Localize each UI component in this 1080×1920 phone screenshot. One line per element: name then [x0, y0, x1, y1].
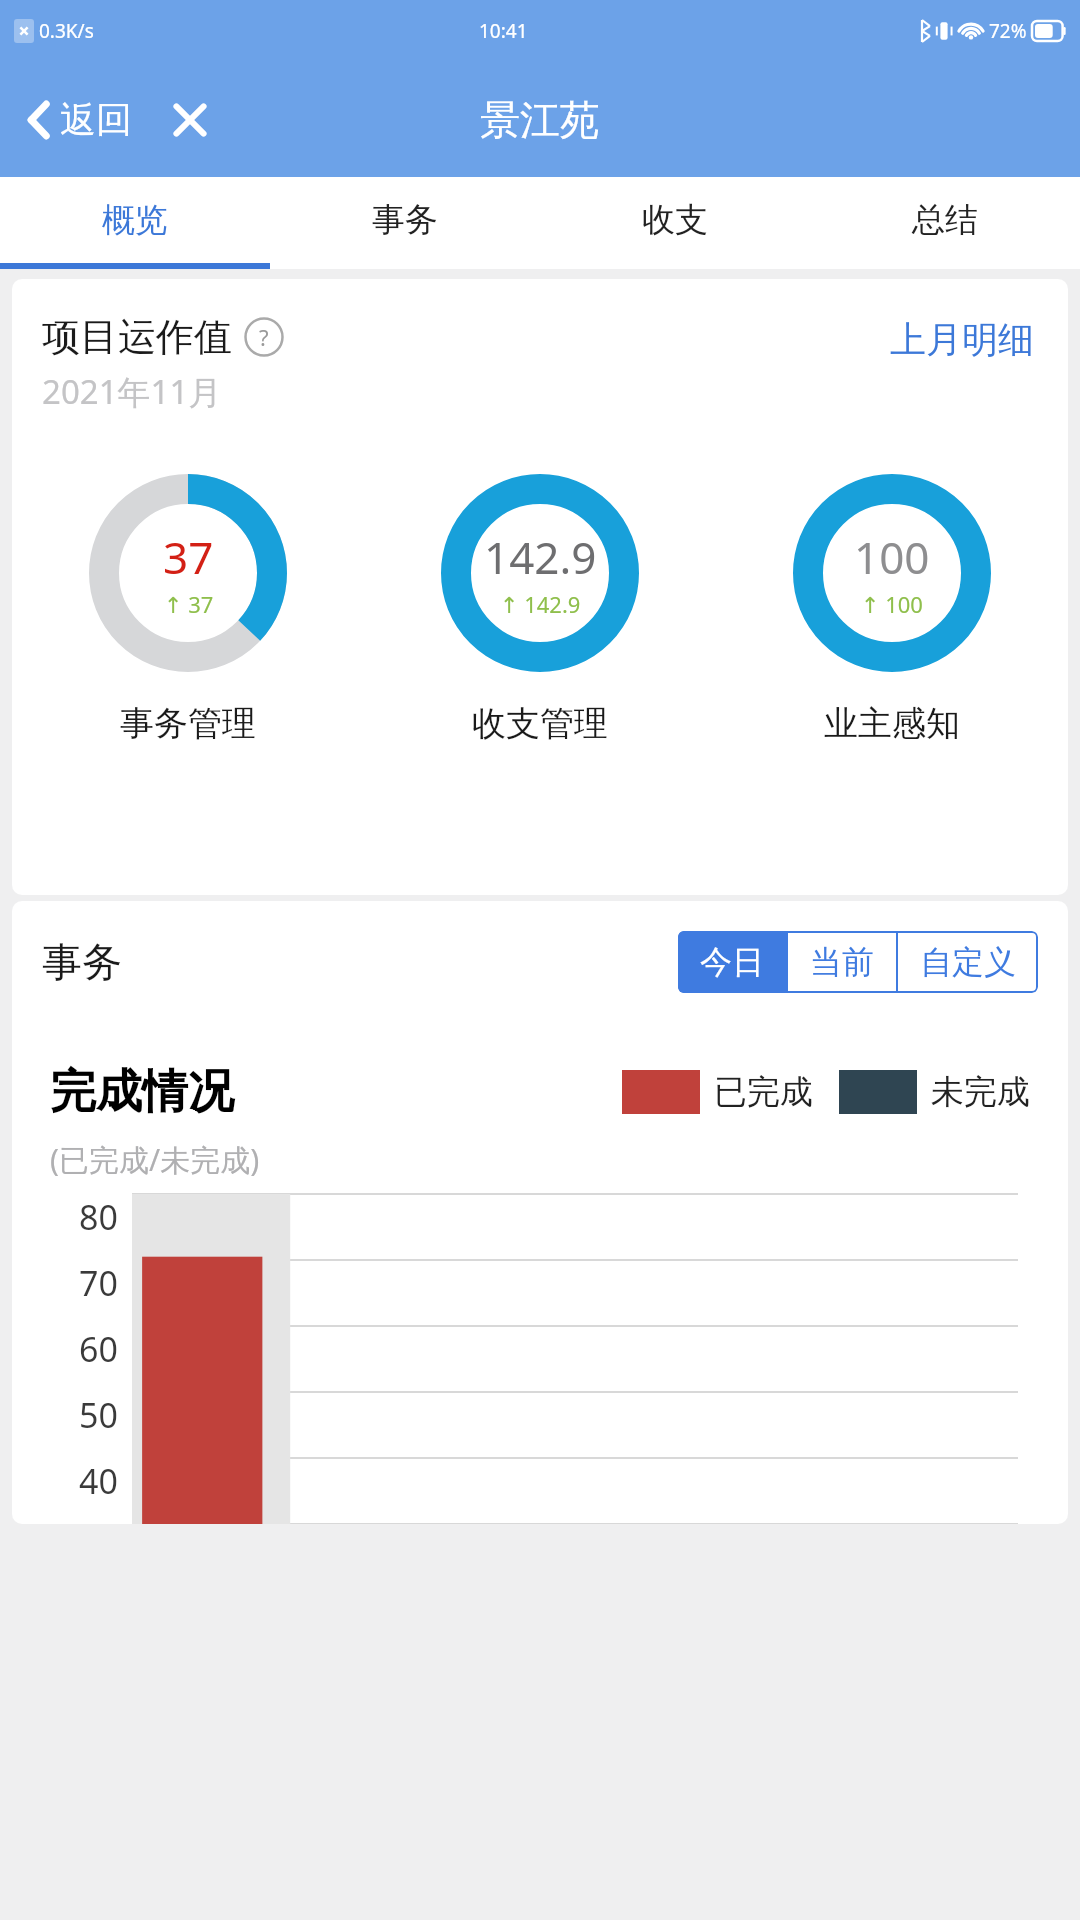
staticText: (已完成/未完成)	[50, 1139, 260, 1180]
staticText: 事务	[42, 937, 122, 987]
button[interactable]: 事务	[270, 177, 540, 263]
staticText: ?	[259, 322, 269, 352]
staticText: ↑ 37	[164, 589, 214, 619]
staticText: 40	[79, 1458, 118, 1504]
staticText: 事务	[372, 199, 438, 241]
button[interactable]: 上月明细	[886, 313, 1038, 366]
staticText: 总结	[912, 199, 978, 241]
staticText: 完成情况	[50, 1063, 234, 1121]
button[interactable]: 今日	[678, 931, 786, 993]
staticText: 事务管理	[120, 702, 256, 745]
staticText: 返回	[60, 97, 132, 142]
button[interactable]: 概览	[0, 177, 270, 263]
staticText: 142.9	[484, 527, 597, 587]
staticText: 0.3K/s	[39, 18, 94, 44]
staticText: 今日	[700, 942, 764, 982]
staticText: 当前	[810, 942, 874, 982]
staticText: 已完成	[714, 1071, 813, 1113]
staticText: 项目运作值	[42, 313, 232, 361]
staticText: 收支管理	[472, 702, 608, 745]
button[interactable]: Close	[160, 90, 220, 150]
button[interactable]: 自定义	[898, 931, 1038, 993]
staticText: ↑ 142.9	[500, 589, 581, 619]
button[interactable]: 总结	[810, 177, 1080, 263]
button[interactable]: 当前	[788, 931, 896, 993]
button[interactable]: Help	[244, 317, 284, 357]
staticText: 上月明细	[890, 317, 1034, 362]
staticText: 37	[163, 527, 214, 587]
staticText: 自定义	[920, 942, 1016, 982]
staticText: 70	[79, 1260, 118, 1306]
staticText: 未完成	[931, 1071, 1030, 1113]
button[interactable]: 收支	[540, 177, 810, 263]
staticText: 2021年11月	[42, 369, 222, 414]
staticText: 72%	[989, 18, 1027, 44]
staticText: 80	[79, 1194, 118, 1240]
staticText: 收支	[642, 199, 708, 241]
staticText: 10:41	[479, 18, 528, 44]
staticText: 50	[79, 1392, 118, 1438]
staticText: ↑ 100	[861, 589, 923, 619]
button[interactable]: 返回	[20, 89, 138, 150]
staticText: 60	[79, 1326, 118, 1372]
staticText: 景江苑	[480, 95, 600, 145]
staticText: 业主感知	[824, 702, 960, 745]
staticText: 100	[854, 527, 930, 587]
staticText: 概览	[102, 199, 168, 241]
